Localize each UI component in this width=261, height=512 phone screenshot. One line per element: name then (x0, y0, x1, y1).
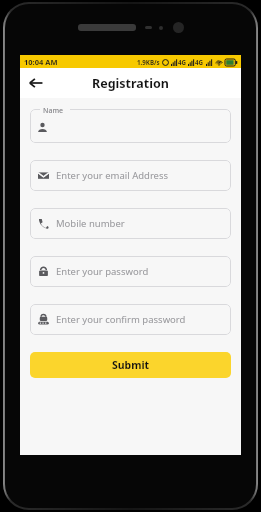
button[interactable]: Mobile number (30, 208, 231, 239)
button[interactable]: Back (26, 73, 46, 93)
button[interactable]: Enter your email Address (30, 160, 231, 191)
staticText: Enter your email Address (56, 169, 169, 182)
button[interactable] (30, 109, 231, 143)
button[interactable]: Submit (30, 352, 231, 378)
staticText: Registration (92, 75, 169, 92)
staticText: Mobile number (56, 217, 125, 230)
staticText: Name (43, 106, 64, 116)
button[interactable]: Enter your confirm password (30, 304, 231, 335)
staticText: 4G (195, 58, 204, 66)
staticText: 1.9KB/s (137, 58, 160, 66)
staticText: Submit (112, 358, 150, 372)
staticText: 4G (178, 58, 187, 66)
button[interactable]: Enter your password (30, 256, 231, 287)
staticText: Enter your confirm password (56, 313, 186, 326)
staticText: Enter your password (56, 265, 149, 278)
staticText: 10:04 AM (24, 57, 58, 67)
